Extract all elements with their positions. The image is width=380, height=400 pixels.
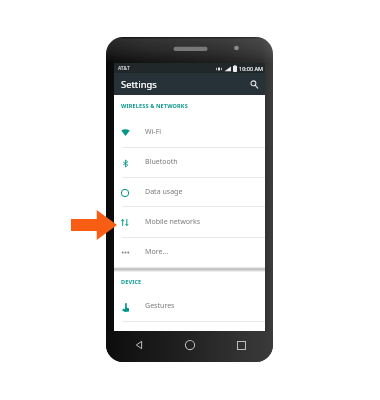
button[interactable]: Recent apps	[230, 334, 252, 356]
button[interactable]: Back	[128, 334, 150, 356]
button[interactable]: Home	[179, 334, 201, 356]
staticText: More...	[145, 246, 169, 256]
staticText: Bluetooth	[145, 156, 178, 166]
staticText: Settings	[121, 78, 157, 91]
button[interactable]: More...	[114, 238, 265, 267]
staticText: WIRELESS & NETWORKS	[121, 102, 188, 109]
button[interactable]: Search	[246, 76, 262, 92]
staticText: Gestures	[145, 300, 175, 310]
staticText: 10:00 AM	[239, 65, 263, 72]
button[interactable]: Gestures	[114, 292, 265, 322]
staticText: Data usage	[145, 186, 183, 196]
button[interactable]: Bluetooth	[114, 148, 265, 178]
button[interactable]: Data usage	[114, 178, 265, 207]
button[interactable]: Wi-Fi	[114, 117, 265, 148]
button[interactable]: Mobile networks	[114, 207, 265, 238]
staticText: Mobile networks	[145, 216, 201, 226]
staticText: AT&T	[118, 65, 130, 72]
staticText: DEVICE	[121, 278, 142, 285]
staticText: Wi-Fi	[145, 126, 162, 136]
